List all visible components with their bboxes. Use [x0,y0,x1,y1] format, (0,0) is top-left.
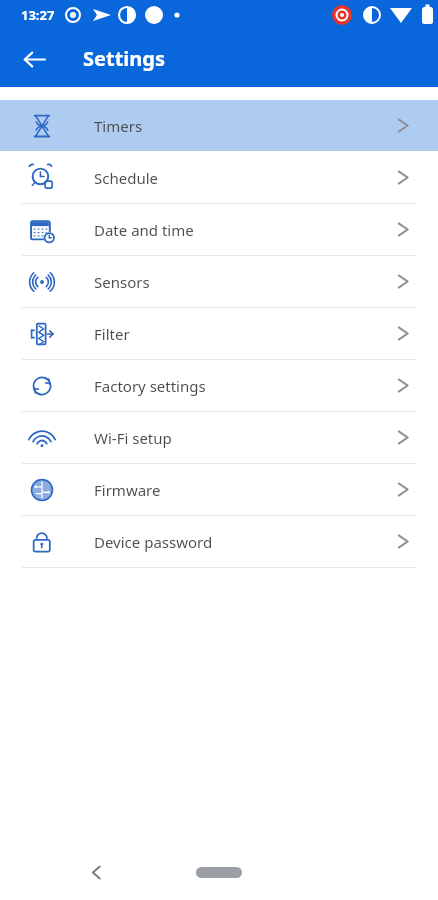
staticText: Factory settings [94,376,206,396]
staticText: Wi-Fi setup [94,428,172,448]
button[interactable]: Schedule [0,152,438,203]
button[interactable]: Factory settings [0,360,438,411]
button[interactable]: Timers [0,100,438,151]
staticText: Filter [94,324,130,344]
button[interactable]: Sensors [0,256,438,307]
staticText: Date and time [94,220,194,240]
staticText: Device password [94,532,213,552]
button[interactable]: Firmware [0,464,438,515]
button[interactable]: Date and time [0,204,438,255]
staticText: Sensors [94,272,150,292]
staticText: Schedule [94,168,158,188]
staticText: Settings [83,45,165,72]
button[interactable]: Back [76,852,116,892]
button[interactable]: Back [14,39,54,79]
button[interactable]: Wi-Fi setup [0,412,438,463]
staticText: Firmware [94,480,161,500]
button[interactable]: Device password [0,516,438,567]
button[interactable]: Filter [0,308,438,359]
button[interactable]: Home [196,867,242,878]
staticText: 13:27 [21,6,55,24]
staticText: Timers [94,116,143,136]
